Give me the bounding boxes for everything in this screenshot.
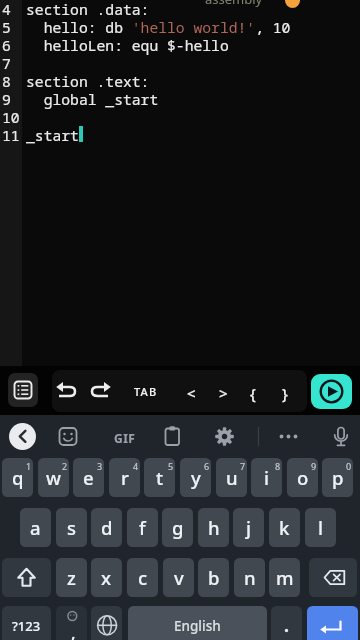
button[interactable]: z [56, 558, 87, 597]
staticText: j [246, 515, 251, 540]
button[interactable] [125, 374, 170, 408]
staticText: 4 [2, 0, 11, 19]
staticText: w [46, 465, 61, 490]
button[interactable]: c [127, 558, 158, 597]
staticText: 4 [133, 460, 139, 472]
button[interactable] [275, 423, 303, 450]
staticText: d [101, 515, 113, 540]
button[interactable]: r [109, 458, 140, 497]
staticText: 3 [97, 460, 103, 472]
button[interactable]: j [233, 508, 264, 547]
button[interactable] [327, 423, 355, 450]
staticText: h [208, 515, 220, 540]
staticText: 9 [2, 89, 11, 109]
button[interactable]: g [162, 508, 193, 547]
button[interactable] [8, 373, 38, 407]
button[interactable] [239, 374, 267, 408]
staticText: a [30, 515, 41, 540]
staticText: q [12, 465, 24, 490]
button[interactable] [52, 374, 84, 408]
staticText: 1 [26, 460, 32, 472]
button[interactable]: u [216, 458, 247, 497]
staticText: 2 [62, 460, 68, 472]
staticText: 9 [311, 460, 317, 472]
button[interactable]: ?123 [2, 606, 51, 640]
button[interactable] [210, 423, 238, 450]
button[interactable] [271, 606, 302, 640]
staticText: } [282, 383, 288, 403]
staticText: section .text: [26, 71, 150, 91]
staticText: English [174, 617, 221, 635]
staticText: section .data: [26, 0, 150, 19]
button[interactable] [158, 423, 186, 450]
staticText: 7 [2, 53, 11, 73]
button[interactable] [311, 374, 352, 409]
staticText: c [138, 565, 148, 590]
button[interactable]: q [2, 458, 33, 497]
staticText: i [264, 465, 269, 490]
staticText: n [244, 565, 256, 590]
staticText: r [121, 465, 129, 490]
button[interactable]: o [287, 458, 318, 497]
button[interactable] [309, 558, 357, 597]
staticText: 10 [2, 107, 20, 127]
staticText: f [139, 515, 146, 540]
button[interactable] [91, 606, 122, 640]
staticText: g [172, 515, 184, 540]
staticText: 0 [346, 460, 352, 472]
staticText: 8 [2, 71, 11, 91]
button[interactable] [9, 423, 36, 450]
staticText: hello: db 'hello world!', 10 [26, 17, 291, 37]
button[interactable]: m [269, 558, 300, 597]
button[interactable]: s [56, 508, 87, 547]
button[interactable] [106, 423, 142, 450]
button[interactable]: English [128, 606, 267, 640]
button[interactable] [56, 606, 87, 640]
button[interactable] [307, 606, 358, 640]
staticText: 8 [275, 460, 281, 472]
button[interactable]: n [234, 558, 265, 597]
button[interactable] [175, 374, 203, 408]
button[interactable]: e [73, 458, 104, 497]
staticText: ?123 [12, 617, 41, 635]
staticText: k [279, 515, 290, 540]
staticText: e [83, 465, 94, 490]
button[interactable]: y [180, 458, 211, 497]
button[interactable] [85, 374, 117, 408]
button[interactable] [271, 374, 299, 408]
staticText: helloLen: equ $-hello [26, 35, 229, 55]
staticText: x [101, 565, 112, 590]
button[interactable]: x [91, 558, 122, 597]
staticText: m [276, 565, 294, 590]
staticText: 6 [204, 460, 210, 472]
staticText: p [332, 465, 344, 490]
button[interactable]: v [163, 558, 194, 597]
staticText: _start [26, 125, 79, 145]
button[interactable]: d [91, 508, 122, 547]
staticText: 7 [240, 460, 246, 472]
button[interactable]: h [198, 508, 229, 547]
button[interactable]: l [305, 508, 336, 547]
staticText: assembly [205, 0, 263, 8]
button[interactable]: t [144, 458, 175, 497]
button[interactable] [54, 423, 82, 450]
button[interactable]: a [20, 508, 51, 547]
staticText: s [67, 515, 76, 540]
button[interactable]: w [38, 458, 69, 497]
button[interactable]: f [127, 508, 158, 547]
button[interactable] [2, 558, 51, 597]
staticText: { [250, 383, 256, 403]
staticText: TAB [134, 384, 158, 399]
staticText: u [226, 465, 238, 490]
staticText: 6 [2, 35, 11, 55]
staticText: l [318, 515, 323, 540]
staticText: t [156, 465, 164, 490]
button[interactable]: p [322, 458, 353, 497]
button[interactable]: k [269, 508, 300, 547]
staticText: y [191, 465, 201, 490]
button[interactable]: b [198, 558, 229, 597]
button[interactable]: i [251, 458, 282, 497]
staticText: 5 [2, 17, 11, 37]
button[interactable] [207, 374, 235, 408]
staticText: > [219, 383, 228, 403]
